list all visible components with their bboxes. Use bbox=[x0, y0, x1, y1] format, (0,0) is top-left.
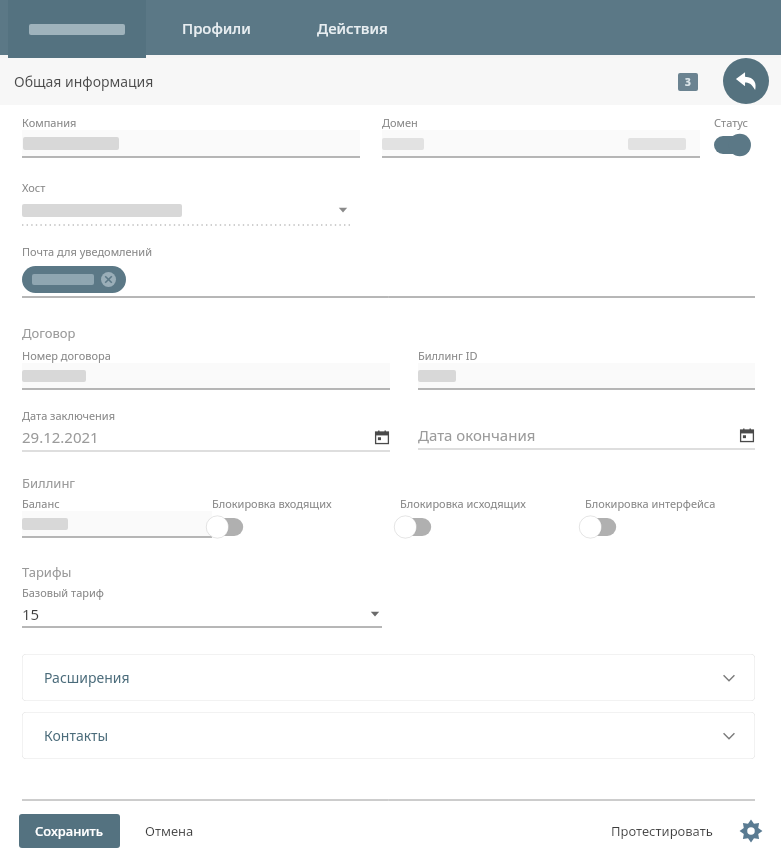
button[interactable]: Блокировка интерфейса bbox=[585, 515, 625, 539]
staticText: Действия bbox=[317, 18, 388, 38]
staticText: Блокировка интерфейса bbox=[585, 496, 716, 511]
staticText: Дата окончания bbox=[418, 425, 536, 445]
staticText: Расширения bbox=[44, 668, 130, 687]
button[interactable]: Настройки bbox=[738, 818, 764, 844]
staticText: Компания bbox=[22, 115, 77, 130]
staticText: Домен bbox=[382, 115, 418, 130]
button[interactable]: Протестировать bbox=[596, 814, 728, 848]
staticText: Блокировка исходящих bbox=[400, 496, 526, 511]
staticText: Почта для уведомлений bbox=[22, 244, 153, 259]
button[interactable]: Профили bbox=[146, 0, 287, 55]
button[interactable] bbox=[22, 266, 126, 293]
button[interactable]: Notifications 3 bbox=[678, 73, 698, 91]
button[interactable]: Расширения bbox=[22, 654, 755, 701]
staticText: Профили bbox=[182, 18, 251, 38]
button[interactable]: Контакты bbox=[22, 712, 755, 759]
button[interactable]: Выбрать дату окончания bbox=[739, 427, 755, 443]
button[interactable]: 15 bbox=[22, 600, 382, 627]
staticText: 29.12.2021 bbox=[22, 427, 99, 447]
staticText: Сохранить bbox=[35, 822, 104, 840]
staticText: Тарифы bbox=[22, 563, 72, 581]
button[interactable]: Отмена bbox=[129, 814, 210, 848]
staticText: Контакты bbox=[44, 726, 109, 745]
staticText: Блокировка входящих bbox=[212, 496, 332, 511]
staticText: Баланс bbox=[22, 496, 60, 511]
staticText: Биллинг bbox=[22, 474, 76, 492]
button[interactable]: Сохранить bbox=[19, 814, 120, 848]
staticText: Договор bbox=[22, 324, 76, 342]
button[interactable]: Действия bbox=[287, 0, 418, 55]
staticText: Номер договора bbox=[22, 348, 111, 363]
staticText: Статус bbox=[714, 115, 748, 130]
button[interactable]: Блокировка входящих bbox=[212, 515, 252, 539]
button[interactable]: Назад bbox=[723, 58, 769, 104]
staticText: 3 bbox=[685, 75, 691, 89]
staticText: Общая информация bbox=[14, 72, 154, 91]
staticText: Дата заключения bbox=[22, 408, 116, 423]
staticText: 15 bbox=[22, 604, 40, 624]
button[interactable]: Блокировка исходящих bbox=[400, 515, 440, 539]
staticText: Протестировать bbox=[611, 822, 713, 840]
button[interactable] bbox=[8, 0, 146, 58]
button[interactable]: Статус bbox=[714, 133, 754, 157]
staticText: Базовый тариф bbox=[22, 585, 104, 600]
staticText: Биллинг ID bbox=[418, 348, 478, 363]
staticText: Хост bbox=[22, 180, 46, 195]
staticText: Отмена bbox=[145, 822, 194, 840]
button[interactable]: Выбрать дату заключения bbox=[374, 429, 390, 445]
